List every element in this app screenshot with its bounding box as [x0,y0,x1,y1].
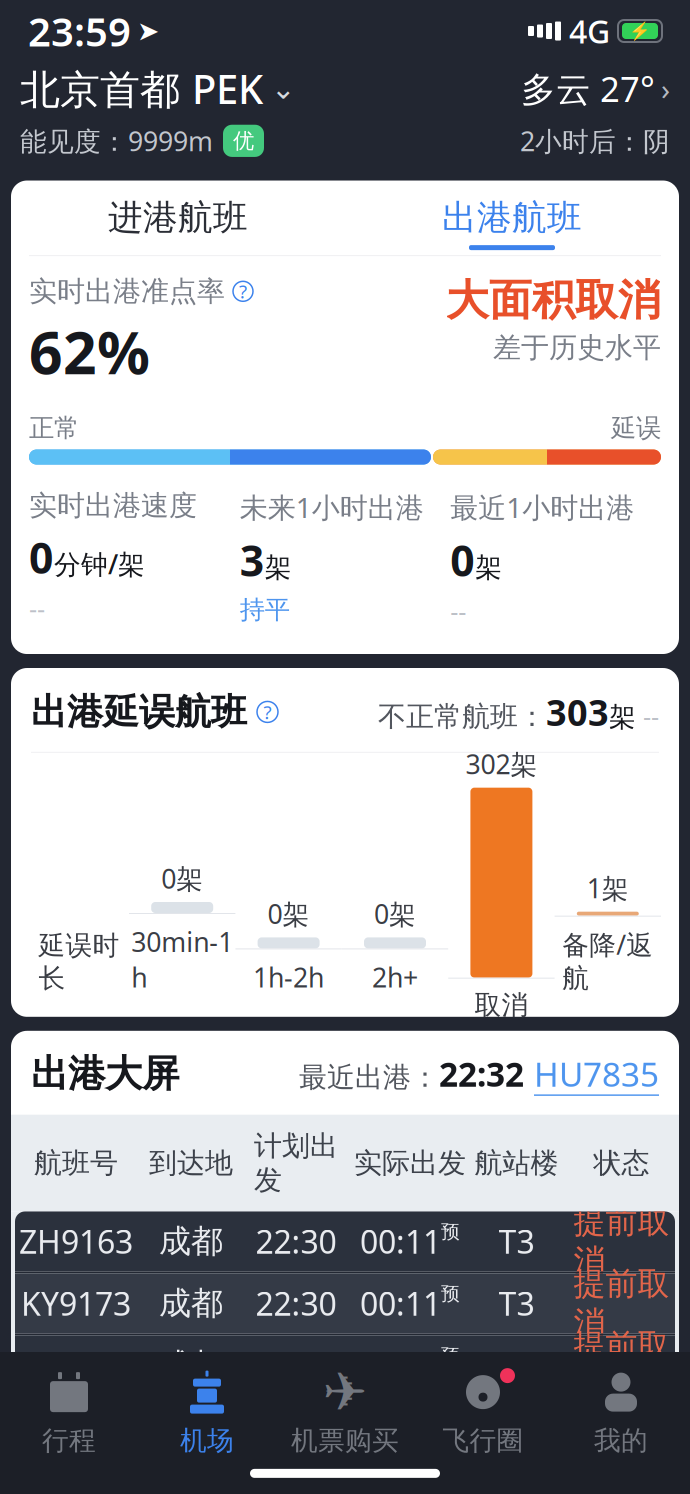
button[interactable]: 北京首都 PEK [20,62,296,115]
staticText: 成都 [159,1284,223,1323]
button[interactable]: 说明 [233,281,253,301]
staticText: 延误 [611,412,661,443]
button[interactable]: ZH9163 [15,1211,675,1271]
staticText: 航站楼 [474,1146,558,1180]
button[interactable]: ✈ [276,1364,414,1461]
button[interactable]: 行程 [0,1364,138,1461]
staticText: ⚡ [629,21,651,41]
staticText: 出港延误航班 [31,690,247,734]
staticText: 架 [265,551,292,584]
staticText: 0架 [374,896,416,931]
staticText: 能见度：9999m [20,123,213,158]
staticText: 0架 [268,896,310,931]
staticText: 00:11 [360,1220,441,1263]
staticText: -- [636,699,659,733]
staticText: 多云 27° [521,65,655,111]
staticText: 未来1小时出港 [240,488,424,526]
staticText: 备降/返航 [562,927,653,995]
staticText: 大面积取消 [446,274,661,326]
staticText: 302架 [465,746,537,782]
staticText: 实时出港准点率 [29,274,225,308]
staticText: ✈ [322,1362,367,1422]
staticText: 进港航班 [108,196,248,239]
staticText: 4G [569,10,610,52]
button[interactable]: 飞行圈 [414,1364,552,1461]
staticText: ? [239,279,247,304]
staticText: ⌄ [271,72,296,105]
staticText: 出港航班 [442,196,582,239]
button[interactable]: 我的 [552,1364,690,1461]
staticText: KY9173 [21,1282,131,1325]
button[interactable]: CA3383 [15,1335,675,1395]
staticText: 最近1小时出港 [450,488,634,526]
staticText: 0 [450,532,474,588]
staticText: ? [263,699,271,724]
staticText: 最近出港： [299,1060,439,1095]
staticText: 提前取消 [573,1202,669,1281]
button[interactable]: HU7835 [534,1052,659,1096]
staticText: 取消 [474,989,528,1021]
staticText: 303 [546,688,609,736]
staticText: 差于历史水平 [493,330,661,365]
staticText: 机场服务 [31,1447,179,1493]
staticText: › [661,69,670,108]
staticText: 1h-2h [253,959,324,995]
staticText: 22:30 [255,1282,336,1325]
staticText: 行程 [42,1424,96,1457]
staticText: 优 [233,128,254,154]
button[interactable]: 说明 [257,701,278,722]
staticText: 北京首都 PEK [20,62,263,115]
button[interactable]: 多云 27° [521,65,670,111]
staticText: 我的 [594,1424,648,1457]
staticText: 23:59 [28,4,131,57]
staticText: CA3383 [20,1344,132,1387]
staticText: 22:30 [255,1344,336,1387]
staticText: 飞行圈 [442,1424,523,1457]
staticText: 架 [609,701,636,733]
staticText: 0架 [161,861,203,896]
button[interactable]: 进港航班 [11,180,345,255]
staticText: 出港大屏 [31,1051,179,1097]
staticText: 分钟/架 [54,546,145,581]
staticText: 00:11 [360,1282,441,1325]
button[interactable]: 机场 [138,1364,276,1461]
staticText: T3 [498,1344,534,1387]
staticText: 2h+ [372,959,418,995]
staticText: 62% [29,312,150,390]
button[interactable]: 出港航班 [345,180,679,255]
staticText: 到达地 [149,1146,233,1180]
staticText: ➤ [137,16,159,46]
staticText: 00:11 [360,1344,441,1387]
staticText: HU7835 [534,1052,659,1096]
staticText: 提前取消 [573,1326,669,1405]
staticText: 状态 [593,1146,649,1180]
staticText: 机场 [180,1424,234,1457]
staticText: 不正常航班： [378,699,546,734]
staticText: T3 [498,1282,534,1325]
staticText: 成都 [159,1222,223,1261]
staticText: 22:30 [255,1220,336,1263]
staticText: T3 [498,1220,534,1263]
staticText: 22:32 [439,1052,524,1096]
staticText: 正常 [29,412,79,443]
staticText: 提前取消 [573,1264,669,1343]
staticText: 实际出发 [354,1146,466,1180]
staticText: 预 [441,1220,460,1243]
staticText: 延误时长 [38,929,119,995]
staticText: 航班号 [34,1146,118,1180]
staticText: 0 [29,529,53,586]
staticText: 成都 [159,1346,223,1385]
staticText: -- [450,594,466,628]
staticText: 2小时后：阴 [520,123,670,158]
staticText: 3 [240,532,264,588]
staticText: 计划出发 [254,1129,338,1197]
staticText: 架 [475,551,502,584]
staticText: 预 [441,1282,460,1305]
staticText: 预 [441,1344,460,1367]
staticText: -- [29,592,45,625]
staticText: 机票购买 [291,1424,399,1457]
staticText: 1架 [587,870,629,906]
staticText: 30min-1h [131,924,233,995]
button[interactable]: KY9173 [15,1273,675,1333]
staticText: 持平 [240,594,290,625]
